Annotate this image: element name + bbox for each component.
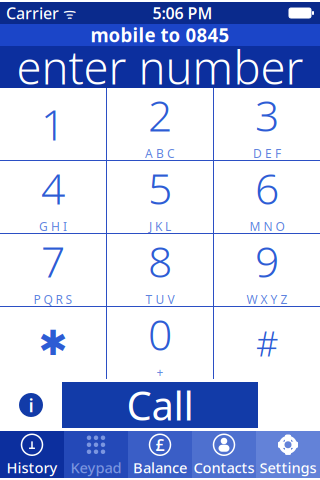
staticText: T U V <box>145 291 174 307</box>
staticText: 3 <box>255 87 279 143</box>
staticText: Keypad <box>70 458 121 477</box>
staticText: ✱ <box>38 323 67 363</box>
staticText: W X Y Z <box>246 291 287 307</box>
button[interactable]: 3 <box>214 88 320 160</box>
staticText: 4 <box>41 160 65 216</box>
button[interactable]: 7 <box>0 234 106 306</box>
button[interactable]: 2 <box>107 88 213 160</box>
button[interactable]: # <box>214 307 320 379</box>
button[interactable]: 5 <box>107 161 213 233</box>
staticText: 9 <box>255 233 279 289</box>
button[interactable]: Settings <box>256 431 320 478</box>
button[interactable]: Contacts <box>192 431 256 478</box>
staticText: 5 <box>148 160 172 216</box>
staticText: Balance <box>133 458 187 477</box>
button[interactable]: ✱ <box>0 307 106 379</box>
staticText: G H I <box>39 218 67 234</box>
button[interactable]: 8 <box>107 234 213 306</box>
staticText: Carrier <box>6 2 59 24</box>
button[interactable]: 6 <box>214 161 320 233</box>
staticText: enter number <box>16 37 303 97</box>
staticText: mobile to 0845 <box>90 23 229 47</box>
staticText: £ <box>155 434 164 455</box>
button[interactable]: Info <box>0 379 62 431</box>
button[interactable]: 1 <box>0 88 106 160</box>
staticText: J K L <box>149 218 171 234</box>
staticText: ᯤ <box>59 3 76 23</box>
button[interactable]: 9 <box>214 234 320 306</box>
staticText: 5:06 PM <box>152 2 212 24</box>
button[interactable]: Keypad <box>64 431 128 478</box>
button[interactable]: 0 <box>107 307 213 379</box>
staticText: Contacts <box>193 458 254 477</box>
staticText: D E F <box>253 145 281 161</box>
staticText: P Q R S <box>33 291 72 307</box>
staticText: History <box>6 458 57 477</box>
staticText: 2 <box>148 87 172 143</box>
staticText: 0 <box>148 306 172 362</box>
staticText: 7 <box>41 233 65 289</box>
staticText: Call <box>126 378 193 431</box>
staticText: A B C <box>145 145 175 161</box>
staticText: M N O <box>249 218 284 234</box>
button[interactable]: History <box>0 431 64 478</box>
button[interactable]: 4 <box>0 161 106 233</box>
staticText: 8 <box>148 233 172 289</box>
staticText: i <box>28 393 33 417</box>
button[interactable]: Call <box>62 382 258 428</box>
staticText: + <box>156 364 163 380</box>
staticText: 1 <box>41 96 65 152</box>
staticText: Settings <box>259 458 316 477</box>
staticText: 6 <box>255 160 279 216</box>
button[interactable]: £ <box>128 431 192 478</box>
staticText: # <box>256 320 278 366</box>
